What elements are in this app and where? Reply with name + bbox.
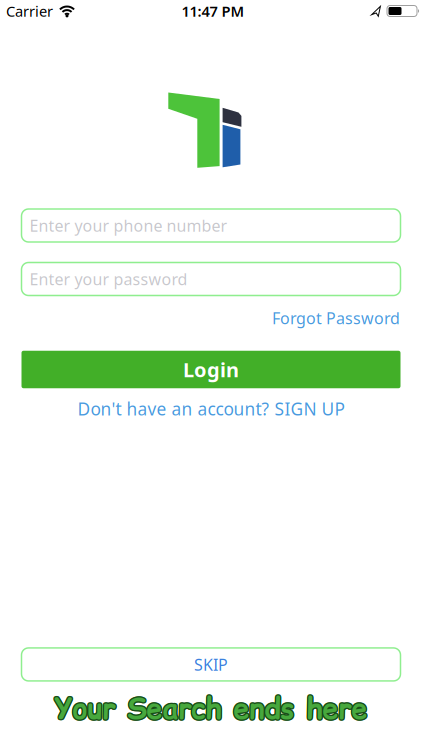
- staticText: Your Search ends here: [53, 689, 366, 728]
- staticText: Enter your password: [29, 268, 187, 290]
- staticText: Your Search ends here: [54, 689, 367, 728]
- button[interactable]: Enter your password: [21, 262, 400, 295]
- button[interactable]: Don't have an account? SIGN UP: [77, 397, 344, 420]
- staticText: Login: [183, 356, 239, 383]
- staticText: Your Search ends here: [54, 690, 367, 729]
- staticText: Your Search ends here: [55, 690, 368, 729]
- staticText: Forgot Password: [272, 307, 400, 329]
- button[interactable]: Login: [21, 351, 400, 388]
- staticText: SKIP: [194, 654, 228, 675]
- staticText: Carrier: [6, 1, 53, 21]
- staticText: Your Search ends here: [56, 689, 369, 728]
- staticText: Don't have an account? SIGN UP: [77, 397, 344, 420]
- button[interactable]: SKIP: [21, 648, 400, 681]
- staticText: Enter your phone number: [29, 215, 227, 236]
- staticText: Your Search ends here: [55, 688, 368, 727]
- staticText: 11:47 PM: [181, 1, 244, 21]
- staticText: Your Search ends here: [54, 688, 367, 727]
- button[interactable]: Forgot Password: [272, 307, 400, 329]
- button[interactable]: Enter your phone number: [21, 209, 400, 242]
- staticText: Your Search ends here: [53, 688, 366, 727]
- staticText: Your Search ends here: [53, 690, 366, 729]
